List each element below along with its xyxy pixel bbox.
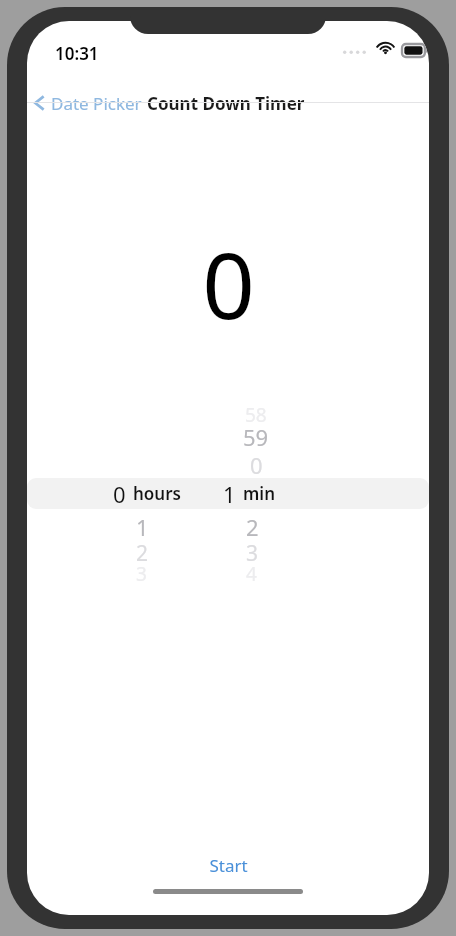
staticText: min: [243, 482, 275, 505]
staticText: 0: [113, 479, 126, 509]
staticText: 59: [243, 422, 269, 452]
staticText: 0: [250, 450, 263, 480]
staticText: Count Down Timer: [147, 92, 305, 115]
staticText: 0: [202, 221, 255, 346]
staticText: 4: [246, 561, 257, 587]
staticText: Date Picker: [51, 92, 142, 115]
staticText: 3: [136, 561, 147, 587]
staticText: 10:31: [55, 42, 99, 65]
staticText: hours: [133, 482, 181, 505]
button[interactable]: Date Picker: [31, 86, 144, 120]
staticText: 1: [136, 512, 149, 542]
button[interactable]: 0: [27, 381, 429, 581]
button[interactable]: Start: [27, 847, 429, 883]
staticText: 58: [245, 402, 267, 428]
staticText: 2: [136, 539, 149, 568]
staticText: 3: [246, 539, 259, 568]
staticText: Start: [209, 854, 248, 877]
staticText: 2: [246, 512, 259, 542]
staticText: 1: [223, 479, 236, 509]
